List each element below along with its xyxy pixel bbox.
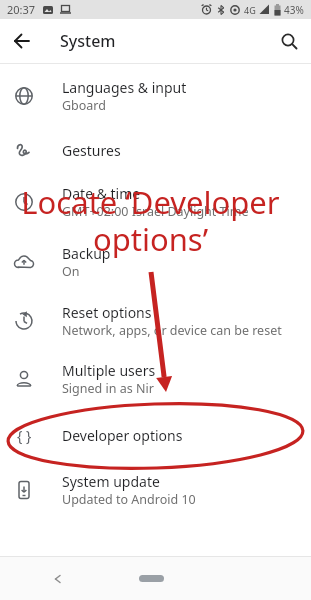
button[interactable]: Gestures [0, 128, 311, 172]
staticText: Backup [62, 244, 111, 263]
staticText: { } [17, 426, 32, 445]
button[interactable]: Languages & input [0, 64, 311, 128]
button[interactable]: Reset options [0, 292, 311, 350]
staticText: Date & time [62, 184, 141, 203]
staticText: Gboard [62, 97, 106, 114]
staticText: 43% [284, 3, 304, 17]
button[interactable] [267, 19, 311, 63]
staticText: Languages & input [62, 78, 187, 97]
button[interactable]: System update [0, 462, 311, 518]
button[interactable]: Multiple users [0, 350, 311, 408]
staticText: Locate ‘Developer options’ [0, 181, 306, 260]
button[interactable]: Date & time [0, 172, 311, 232]
staticText: Network, apps, or device can be reset [62, 322, 282, 339]
button[interactable] [46, 567, 70, 591]
staticText: Multiple users [62, 361, 156, 380]
staticText: 20:37 [7, 2, 36, 17]
staticText: System update [62, 472, 160, 491]
staticText: Developer options [62, 426, 183, 445]
staticText: On [62, 263, 80, 280]
staticText: System [60, 30, 116, 52]
button[interactable]: { } [0, 408, 311, 462]
staticText: Reset options [62, 303, 152, 322]
staticText: Gestures [62, 141, 121, 160]
staticText: Signed in as Nir [62, 380, 154, 397]
staticText: 4G [244, 4, 256, 16]
button[interactable] [0, 19, 44, 63]
staticText: GMT+02:00 Israel Daylight Time [62, 203, 249, 220]
staticText: Updated to Android 10 [62, 491, 196, 508]
button[interactable] [139, 575, 164, 582]
button[interactable]: Backup [0, 232, 311, 292]
